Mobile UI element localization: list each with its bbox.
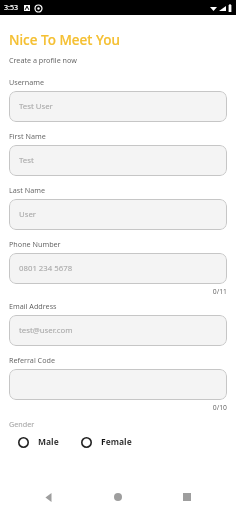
staticText: Nice To Meet You [9,31,120,49]
staticText: Create a profile now [9,55,77,65]
staticText: First Name [9,131,46,141]
staticText: Last Name [9,185,45,195]
button[interactable]: 0801 234 5678 [9,253,227,284]
staticText: 0/11 [9,287,227,296]
staticText: Male [38,436,59,448]
button[interactable]: test@user.com [9,315,227,346]
staticText: 0/10 [9,403,227,412]
staticText: Gender [9,419,35,429]
staticText: User [19,209,37,220]
button[interactable]: Back [38,486,60,508]
staticText: Phone Number [9,239,61,249]
button[interactable]: Test [9,145,227,176]
button[interactable]: Home [107,486,129,508]
staticText: Female [101,436,132,448]
staticText: Test User [19,101,53,112]
button[interactable]: Male [18,436,59,448]
button[interactable]: Female [81,436,132,448]
staticText: Referral Code [9,355,55,365]
staticText: 0801 234 5678 [19,263,73,274]
button[interactable]: Recent apps [176,486,198,508]
button[interactable]: User [9,199,227,230]
staticText: Email Address [9,301,57,311]
staticText: 3:53 [4,3,18,13]
staticText: Test [19,155,34,166]
staticText: Username [9,77,44,87]
button[interactable] [9,369,227,400]
button[interactable]: Test User [9,91,227,122]
staticText: test@user.com [19,325,73,336]
